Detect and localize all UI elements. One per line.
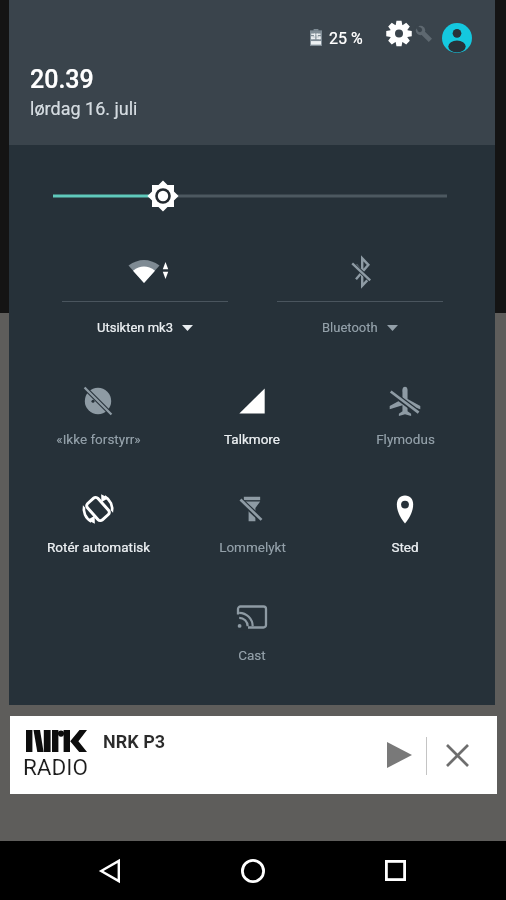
button[interactable]: Close [426,724,488,786]
button[interactable]: Sted [329,454,481,554]
staticText: Sted [391,539,419,555]
button[interactable]: RADIO [10,716,497,794]
button[interactable]: Flymodus [329,346,481,446]
button[interactable]: Home [218,841,288,900]
staticText: Cast [238,647,266,663]
staticText: Lommelykt [219,539,286,555]
button[interactable]: Bluetooth [233,150,486,350]
button[interactable]: Brightness [44,176,460,216]
staticText: Bluetooth [322,320,378,335]
button[interactable]: 25 % [9,0,495,705]
staticText: 20.39 [30,65,94,94]
button[interactable]: Rotér automatisk [22,454,174,554]
button[interactable]: Recent apps [360,841,430,900]
button[interactable]: Play [368,724,430,786]
staticText: lørdag 16. juli [30,98,138,119]
button[interactable]: Cast [176,562,328,662]
button[interactable]: Back [75,841,145,900]
staticText: Utsikten mk3 [97,320,173,335]
staticText: RADIO [23,754,88,780]
button[interactable]: User account [442,23,472,53]
staticText: 25 % [329,29,363,48]
button[interactable]: Utsikten mk3 [18,150,271,350]
button[interactable]: Settings [387,19,433,51]
button[interactable]: «Ikke forstyrr» [22,346,174,446]
staticText: Talkmore [224,431,280,447]
button[interactable]: Lommelykt [176,454,328,554]
staticText: Rotér automatisk [47,539,150,555]
button[interactable]: Talkmore [176,346,328,446]
staticText: NRK P3 [103,731,166,752]
staticText: «Ikke forstyrr» [56,431,141,447]
staticText: Flymodus [376,431,435,447]
